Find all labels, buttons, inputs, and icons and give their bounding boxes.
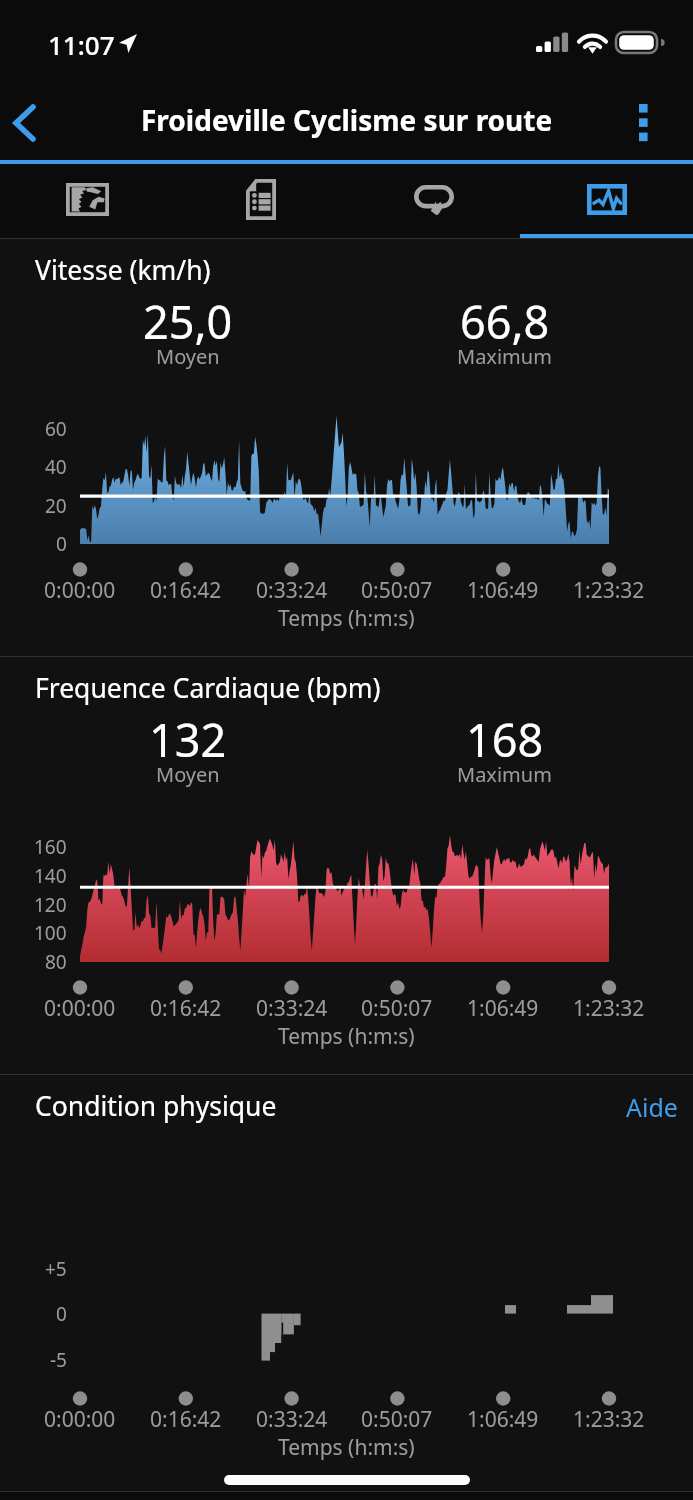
staticText: 1:23:32 bbox=[573, 576, 645, 605]
staticText: 0:16:42 bbox=[150, 994, 222, 1023]
staticText: 0:50:07 bbox=[361, 576, 433, 605]
staticText: Temps (h:m:s) bbox=[278, 1022, 415, 1051]
staticText: 0:16:42 bbox=[150, 1405, 222, 1434]
staticText: 1:06:49 bbox=[467, 1405, 539, 1434]
staticText: 0:16:42 bbox=[150, 576, 222, 605]
staticText: 0:33:24 bbox=[256, 1405, 328, 1434]
button[interactable]: Aide bbox=[608, 1080, 693, 1134]
button[interactable]: Details bbox=[174, 164, 347, 239]
staticText: 25,0 bbox=[143, 291, 233, 352]
staticText: 0:50:07 bbox=[361, 1405, 433, 1434]
staticText: 11:07 bbox=[48, 27, 115, 62]
staticText: 60 bbox=[45, 416, 67, 442]
staticText: 0:00:00 bbox=[44, 994, 116, 1023]
staticText: 20 bbox=[45, 493, 67, 519]
button[interactable]: Charts bbox=[520, 164, 693, 239]
staticText: 160 bbox=[34, 834, 67, 860]
staticText: 40 bbox=[45, 454, 67, 480]
staticText: Moyen bbox=[156, 761, 220, 788]
button[interactable]: Laps bbox=[347, 164, 520, 239]
staticText: 132 bbox=[149, 709, 227, 770]
staticText: 0 bbox=[56, 531, 67, 557]
staticText: Vitesse (km/h) bbox=[35, 252, 211, 288]
staticText: 140 bbox=[34, 863, 67, 889]
staticText: Moyen bbox=[156, 343, 220, 370]
staticText: 0:00:00 bbox=[44, 1405, 116, 1434]
staticText: 1:06:49 bbox=[467, 994, 539, 1023]
staticText: 0:00:00 bbox=[44, 576, 116, 605]
staticText: Frequence Cardiaque (bpm) bbox=[35, 670, 381, 706]
button[interactable]: More options bbox=[631, 78, 693, 160]
button[interactable]: Map bbox=[0, 164, 174, 239]
staticText: 0:33:24 bbox=[256, 994, 328, 1023]
button[interactable]: Back bbox=[0, 78, 62, 160]
staticText: Aide bbox=[626, 1090, 678, 1124]
staticText: Temps (h:m:s) bbox=[278, 604, 415, 633]
staticText: 66,8 bbox=[460, 291, 550, 352]
staticText: 0 bbox=[56, 1301, 67, 1327]
staticText: 1:23:32 bbox=[573, 994, 645, 1023]
staticText: 168 bbox=[466, 709, 544, 770]
staticText: 80 bbox=[45, 949, 67, 975]
staticText: Maximum bbox=[457, 343, 552, 370]
staticText: 1:23:32 bbox=[573, 1405, 645, 1434]
staticText: 0:33:24 bbox=[256, 576, 328, 605]
staticText: Froideville Cyclisme sur route bbox=[141, 101, 553, 139]
staticText: 120 bbox=[34, 892, 67, 918]
staticText: 0:50:07 bbox=[361, 994, 433, 1023]
staticText: -5 bbox=[50, 1347, 67, 1373]
staticText: Temps (h:m:s) bbox=[278, 1433, 415, 1462]
staticText: 1:06:49 bbox=[467, 576, 539, 605]
staticText: +5 bbox=[45, 1256, 67, 1282]
staticText: Maximum bbox=[457, 761, 552, 788]
staticText: Condition physique bbox=[35, 1088, 277, 1124]
staticText: 100 bbox=[34, 920, 67, 946]
